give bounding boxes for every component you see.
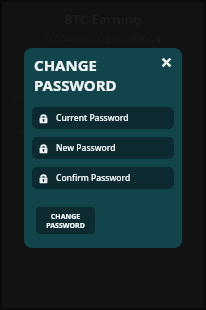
button[interactable]: New Password [32,137,174,159]
staticText: CHANGE [34,55,97,75]
button[interactable]: Current Password [32,107,174,129]
staticText: Current Password [56,112,129,124]
button[interactable]: Confirm Password [32,167,174,189]
staticText: PASSWORD [34,75,117,95]
staticText: Update API [12,128,55,138]
staticText: Confirm Password [56,172,131,184]
button[interactable]: Close [156,52,176,72]
staticText: Change Password [12,94,71,104]
staticText: Support [12,162,48,172]
staticText: BTC Earning [64,10,142,28]
button[interactable]: CHANGE PASSWORD [36,207,95,234]
staticText: New Password [56,142,116,154]
staticText: CHANGE PASSWORD [46,212,85,230]
